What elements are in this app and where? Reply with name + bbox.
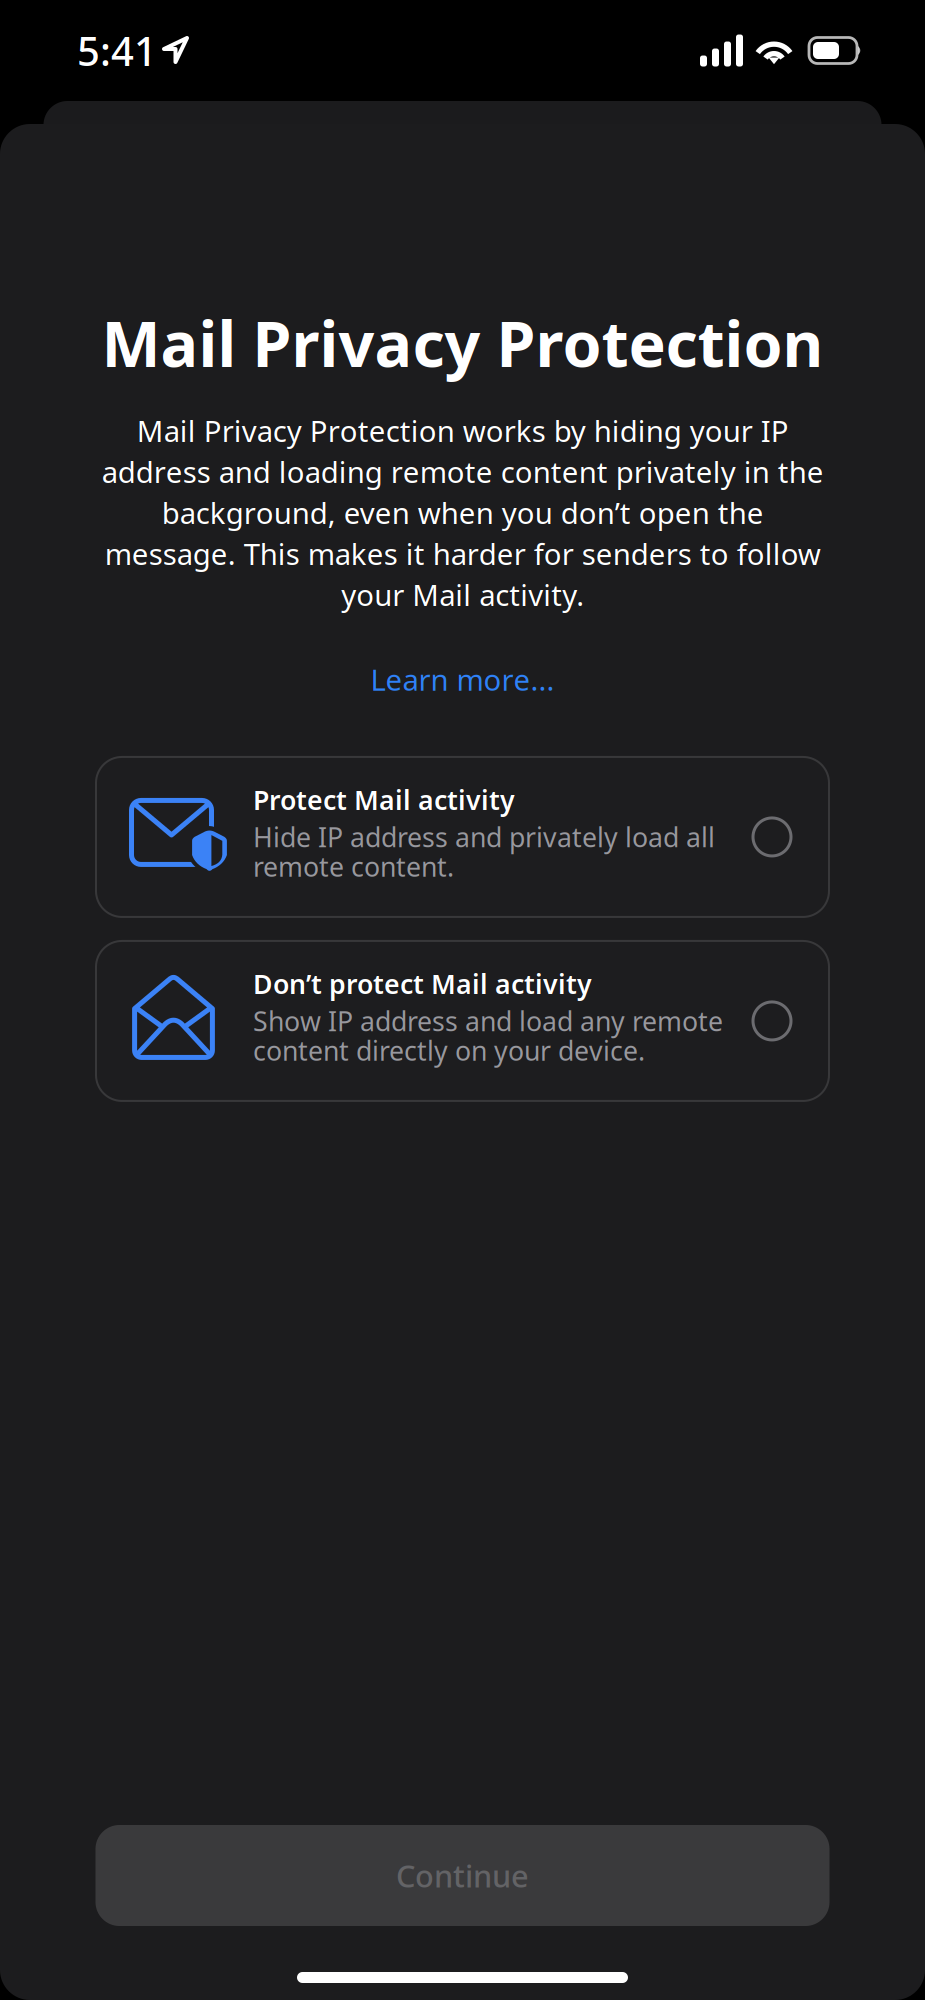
staticText: Protect Mail activity [253,782,515,817]
button[interactable]: Protect Mail activity [96,757,829,917]
staticText: 5:41 [77,24,157,77]
staticText: Show IP address and load any remote cont… [253,1003,723,1068]
button[interactable]: Learn more... [354,653,570,706]
button[interactable]: Don’t protect Mail activity [96,941,829,1101]
button[interactable]: Continue [95,1825,829,1926]
staticText: Learn more... [370,660,554,699]
staticText: Continue [396,1855,529,1896]
staticText: Don’t protect Mail activity [253,966,592,1001]
staticText: Mail Privacy Protection [101,301,823,384]
staticText: Hide IP address and privately load all r… [253,819,715,884]
staticText: Mail Privacy Protection works by hiding … [101,411,823,614]
